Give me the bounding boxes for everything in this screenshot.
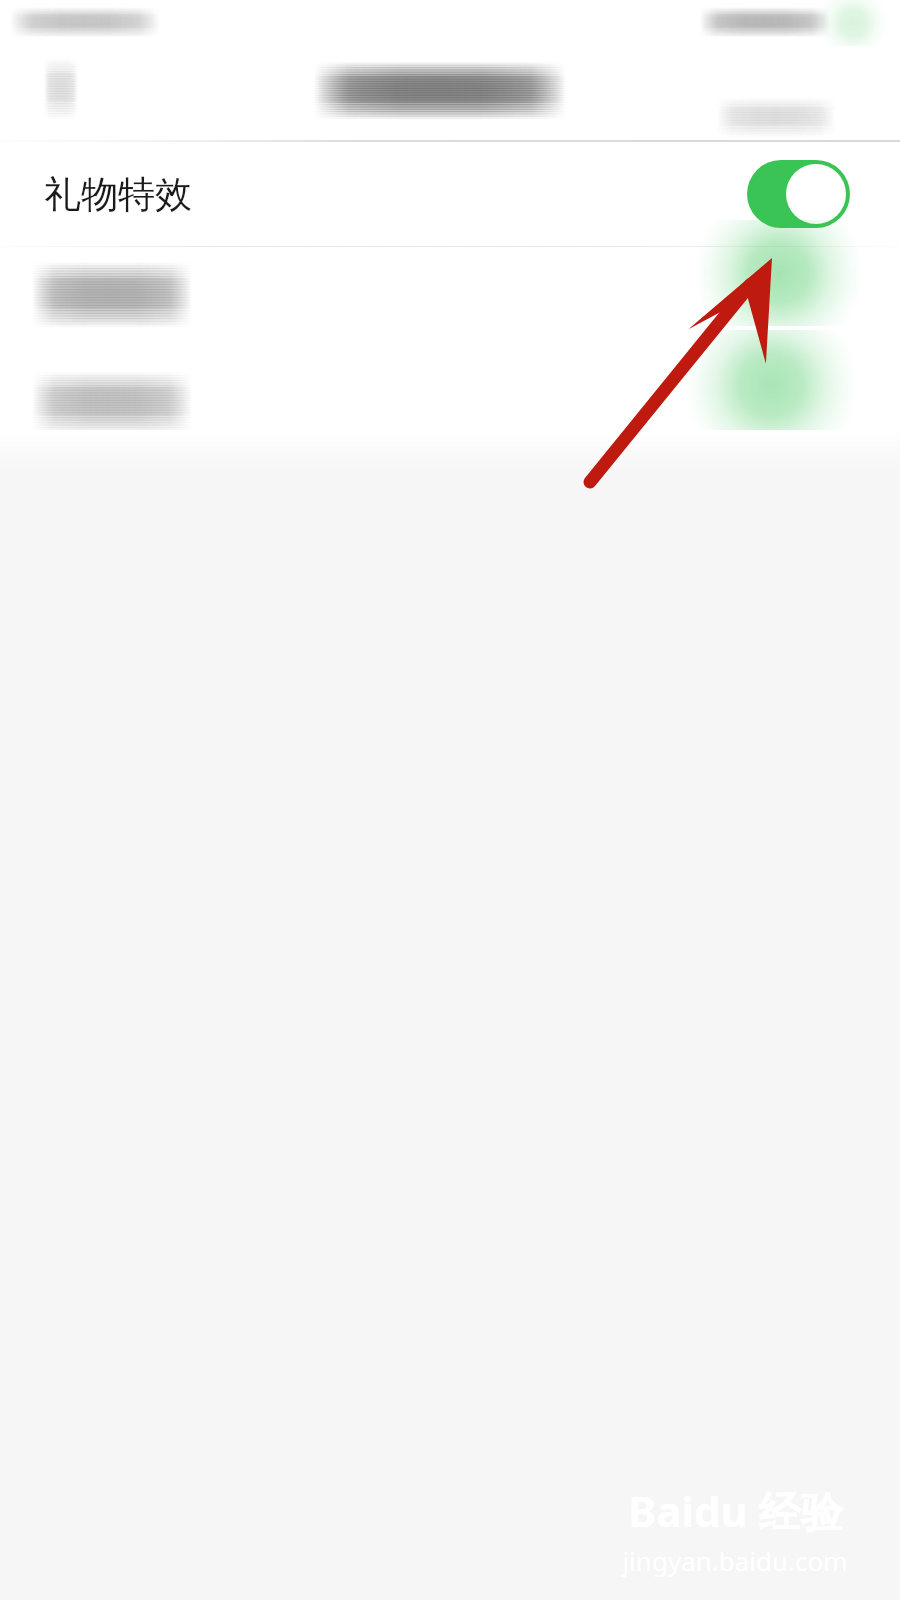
button[interactable]: 礼物特效 [0, 142, 900, 246]
staticText: 礼物特效 [44, 171, 192, 218]
button[interactable]: 礼物特效 开关 [747, 160, 850, 228]
staticText: Baidu 经验 [628, 1482, 843, 1539]
button[interactable] [0, 356, 900, 466]
staticText: jingyan.baidu.com [622, 1543, 848, 1578]
button[interactable] [0, 248, 900, 354]
